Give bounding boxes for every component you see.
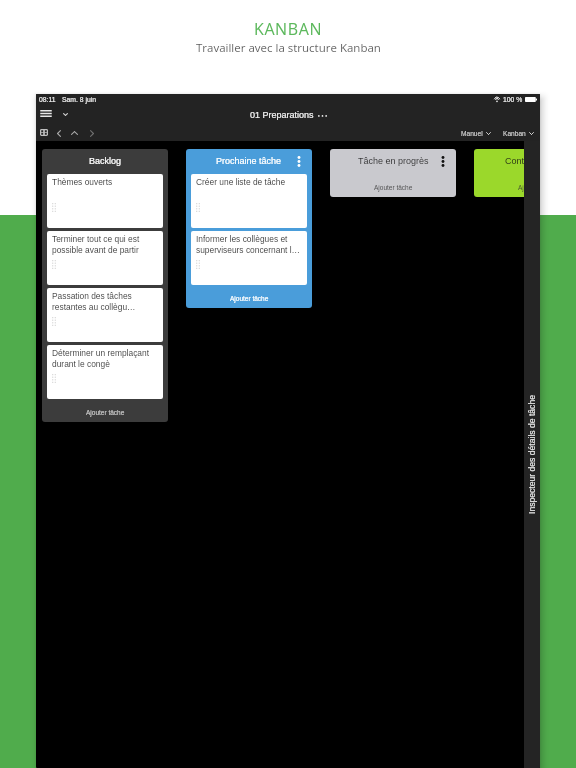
staticText: Ajouter tâche: [374, 184, 413, 191]
button[interactable]: Prochaine tâche: [186, 149, 312, 174]
button[interactable]: Backlog: [42, 149, 168, 174]
staticText: Ajouter tâche: [230, 295, 269, 302]
button[interactable]: Tâche en progrès: [330, 149, 456, 174]
button[interactable]: Column menu: [293, 155, 305, 167]
button[interactable]: Déterminer un remplaçant durant le congè: [47, 345, 163, 399]
button[interactable]: Thèmes ouverts: [47, 174, 163, 228]
button[interactable]: Passation des tâches restantes au collèg…: [47, 288, 163, 342]
staticText: Créer une liste de tâche: [196, 177, 307, 186]
button[interactable]: Ajouter tâche: [474, 174, 540, 197]
button[interactable]: Column menu: [437, 155, 449, 167]
staticText: Manuel: [461, 130, 483, 137]
staticText: Déterminer un remplaçant durant le congè: [52, 348, 163, 369]
staticText: 100 %: [503, 96, 523, 104]
staticText: Ajouter tâche: [86, 409, 125, 416]
button[interactable]: Créer une liste de tâche: [191, 174, 307, 228]
staticText: Tâche en progrès: [358, 156, 429, 166]
button[interactable]: Terminer tout ce qui est possible avant …: [47, 231, 163, 285]
button[interactable]: Ajouter tâche: [330, 174, 456, 197]
staticText: Thèmes ouverts: [52, 177, 163, 186]
button[interactable]: Expand: [56, 105, 74, 125]
staticText: Inspecteur des détails de tâche: [527, 395, 537, 514]
button[interactable]: Grid view: [36, 125, 52, 141]
button[interactable]: Inspecteur des détails de tâche: [524, 141, 540, 768]
staticText: Kanban: [503, 130, 526, 137]
button[interactable]: Informer les collègues et superviseurs c…: [191, 231, 307, 285]
staticText: KANBAN: [254, 18, 323, 40]
staticText: Travailler avec la structure Kanban: [196, 40, 381, 56]
button[interactable]: Ajouter tâche: [42, 399, 168, 422]
staticText: Contrôle qualité: [505, 156, 540, 166]
button[interactable]: Manuel: [459, 128, 493, 139]
staticText: Passation des tâches restantes au collèg…: [52, 291, 163, 312]
button[interactable]: Menu: [36, 105, 56, 125]
staticText: Ajouter tâche: [518, 184, 540, 191]
button[interactable]: Kanban: [501, 128, 536, 139]
button[interactable]: Ajouter tâche: [186, 285, 312, 308]
staticText: Informer les collègues et superviseurs c…: [196, 234, 307, 255]
button[interactable]: Contrôle qualité: [474, 149, 540, 174]
staticText: 01 Preparations: [250, 110, 314, 120]
staticText: Backlog: [89, 156, 122, 166]
button[interactable]: Back: [51, 125, 67, 141]
button[interactable]: Up: [66, 125, 82, 141]
staticText: Prochaine tâche: [216, 156, 282, 166]
staticText: Sam. 8 juin: [62, 96, 97, 104]
button[interactable]: 01 Preparations: [250, 110, 327, 120]
button[interactable]: Forward: [84, 125, 100, 141]
staticText: 08:11: [39, 96, 56, 104]
staticText: Terminer tout ce qui est possible avant …: [52, 234, 163, 255]
